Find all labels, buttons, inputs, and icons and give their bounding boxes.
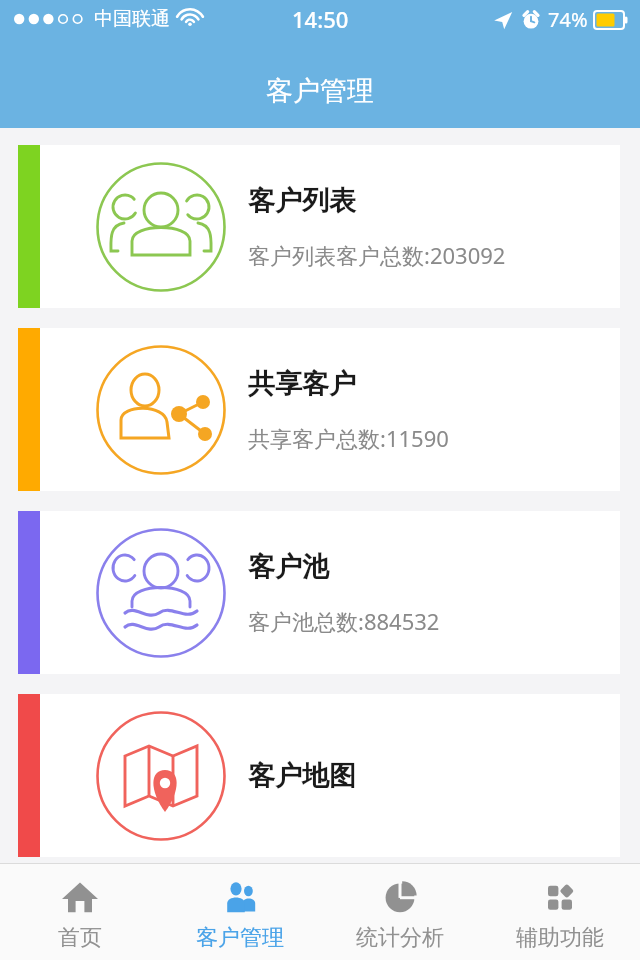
staticText: 辅助功能 [516, 924, 604, 952]
staticText: 客户管理 [196, 924, 284, 952]
button[interactable]: 共享客户 [18, 328, 620, 491]
staticText: 客户地图 [248, 759, 356, 793]
staticText: 客户列表 [248, 184, 356, 218]
staticText: 客户池总数:884532 [248, 606, 440, 636]
button[interactable]: 客户管理 [160, 864, 320, 960]
staticText: 共享客户 [248, 367, 356, 401]
button[interactable]: 首页 [0, 864, 160, 960]
staticText: 客户池 [248, 550, 329, 584]
button[interactable]: 统计分析 [320, 864, 480, 960]
staticText: 74% [548, 6, 588, 33]
staticText: 统计分析 [356, 924, 444, 952]
button[interactable]: 客户地图 [18, 694, 620, 857]
staticText: 客户管理 [266, 74, 374, 108]
staticText: 共享客户总数:11590 [248, 423, 449, 453]
staticText: 客户列表客户总数:203092 [248, 240, 506, 270]
staticText: 14:50 [292, 4, 349, 34]
staticText: 中国联通 [94, 7, 170, 31]
button[interactable]: 辅助功能 [480, 864, 640, 960]
staticText: 首页 [58, 924, 102, 952]
button[interactable]: 客户列表 [18, 145, 620, 308]
button[interactable]: 客户池 [18, 511, 620, 674]
